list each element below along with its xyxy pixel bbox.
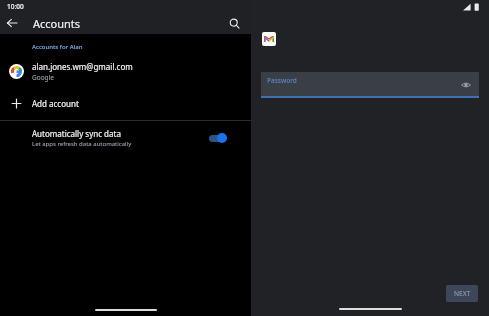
button[interactable]: Automatically sync data (0, 121, 251, 155)
staticText: alan.jones.wm@gmail.com (32, 61, 133, 72)
button[interactable]: Show password (459, 78, 473, 92)
button[interactable]: NEXT (446, 285, 478, 302)
staticText: Let apps refresh data automatically (32, 140, 132, 148)
button[interactable]: Add account (0, 92, 251, 114)
staticText: 10:00 (7, 2, 24, 11)
staticText: Accounts for Alan (32, 43, 83, 51)
staticText: Accounts (33, 16, 81, 31)
button[interactable]: alan.jones.wm@gmail.com (0, 58, 251, 85)
button[interactable]: Back (0, 11, 24, 35)
button[interactable]: Automatically sync data (206, 130, 242, 146)
staticText: Automatically sync data (32, 128, 121, 139)
staticText: NEXT (454, 289, 471, 298)
staticText: Password (267, 76, 297, 85)
button[interactable]: Search (222, 11, 246, 35)
staticText: Google (32, 73, 54, 82)
button[interactable]: Password (261, 72, 479, 98)
staticText: Add account (32, 98, 79, 109)
